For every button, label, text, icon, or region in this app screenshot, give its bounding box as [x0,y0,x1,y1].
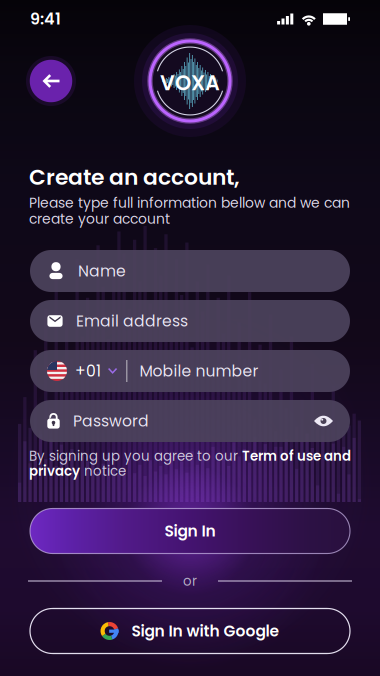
staticText: Mobile number [139,360,258,382]
button[interactable]: Back [24,54,78,108]
button[interactable]: Sign In [30,508,350,553]
staticText: Email address [76,310,188,332]
staticText: 9:41 [30,8,61,30]
button[interactable]: Sign In with Google [30,608,350,653]
staticText: +01 [75,360,101,382]
staticText: Sign In [164,520,215,542]
staticText: Name [78,260,126,282]
staticText: Please type full information bellow and … [29,193,350,213]
staticText: VOXA [160,68,220,97]
staticText: privacy [29,462,80,480]
staticText: By signing up you agree to our [29,447,242,465]
staticText: notice [80,462,126,480]
staticText: Password [73,410,149,432]
staticText: Term of use and [242,447,351,465]
staticText: or [183,572,197,590]
staticText: Create an account, [29,162,240,192]
staticText: Sign In with Google [131,620,279,642]
staticText: create your account [29,209,170,229]
